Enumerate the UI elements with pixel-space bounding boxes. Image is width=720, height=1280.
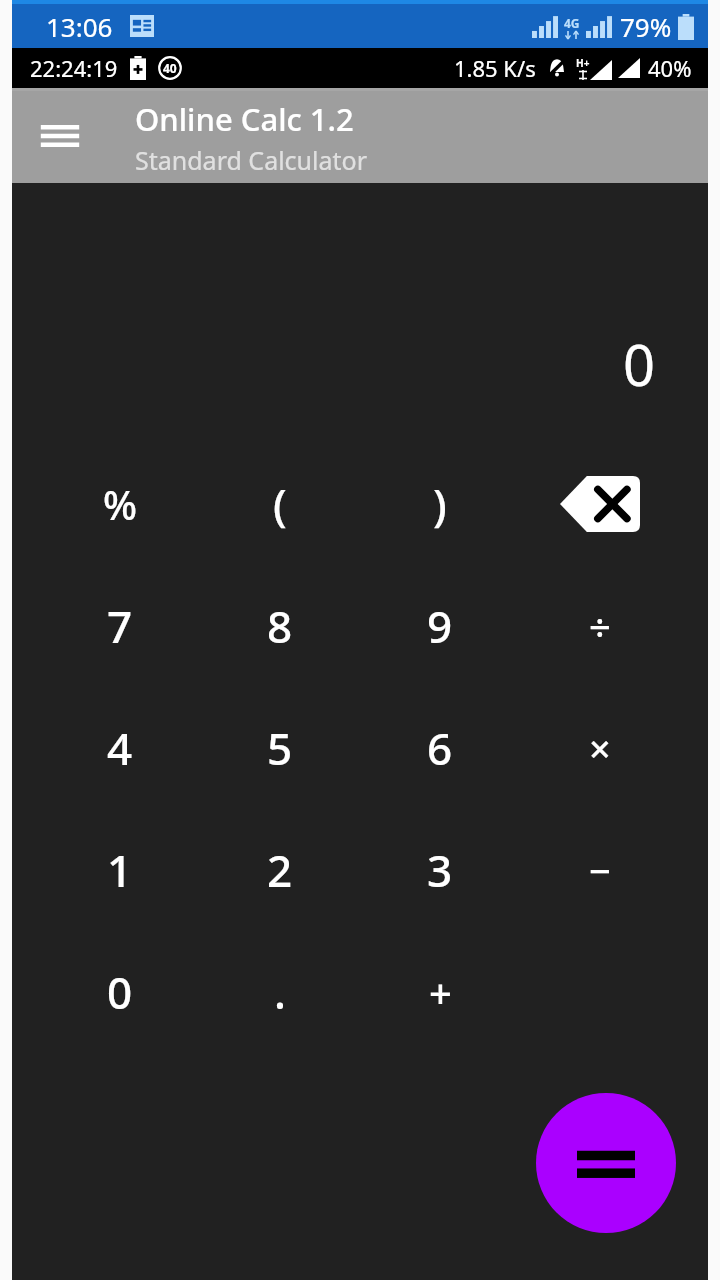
staticText: 40 — [163, 60, 177, 76]
staticText: 22:24:19 — [30, 53, 118, 83]
button[interactable]: 8 — [220, 570, 340, 682]
staticText: 13:06 — [46, 9, 113, 44]
staticText: − — [589, 844, 611, 896]
button[interactable]: Equals — [536, 1093, 676, 1233]
button[interactable]: % — [60, 448, 180, 560]
staticText: . — [274, 962, 286, 1022]
staticText: 7 — [107, 596, 133, 656]
button[interactable]: × — [540, 692, 660, 804]
button[interactable]: . — [220, 936, 340, 1048]
staticText: % — [103, 477, 138, 531]
staticText: 3 — [427, 840, 453, 900]
button[interactable]: 4 — [60, 692, 180, 804]
button[interactable]: ) — [380, 448, 500, 560]
staticText: 4 — [107, 718, 133, 778]
button[interactable]: 7 — [60, 570, 180, 682]
staticText: Standard Calculator — [135, 143, 368, 177]
button[interactable]: 3 — [380, 814, 500, 926]
button[interactable]: + — [380, 936, 500, 1048]
staticText: 6 — [427, 718, 453, 778]
staticText: 4G — [564, 15, 580, 31]
button[interactable]: Backspace — [540, 448, 660, 560]
staticText: 8 — [267, 596, 293, 656]
staticText: ÷ — [589, 600, 611, 652]
button[interactable]: 2 — [220, 814, 340, 926]
staticText: 0 — [107, 962, 133, 1022]
staticText: 79% — [620, 9, 672, 44]
staticText: 9 — [427, 596, 453, 656]
button[interactable]: 0 — [60, 936, 180, 1048]
staticText: ) — [433, 474, 447, 534]
staticText: + — [429, 965, 452, 1019]
button[interactable]: 9 — [380, 570, 500, 682]
staticText: 1.85 K/s — [454, 53, 536, 83]
staticText: 40% — [648, 53, 692, 83]
staticText: 0 — [623, 326, 656, 402]
staticText: 2 — [267, 840, 293, 900]
button[interactable]: Open navigation menu — [32, 108, 88, 164]
button[interactable]: ÷ — [540, 570, 660, 682]
staticText: ( — [273, 474, 287, 534]
button[interactable]: ( — [220, 448, 340, 560]
staticText: 5 — [267, 718, 293, 778]
staticText: H+ — [576, 56, 590, 70]
button[interactable]: − — [540, 814, 660, 926]
staticText: 1 — [107, 840, 133, 900]
button[interactable]: 1 — [60, 814, 180, 926]
button[interactable]: 5 — [220, 692, 340, 804]
button[interactable]: 6 — [380, 692, 500, 804]
staticText: Online Calc 1.2 — [135, 98, 354, 140]
staticText: × — [589, 722, 611, 774]
